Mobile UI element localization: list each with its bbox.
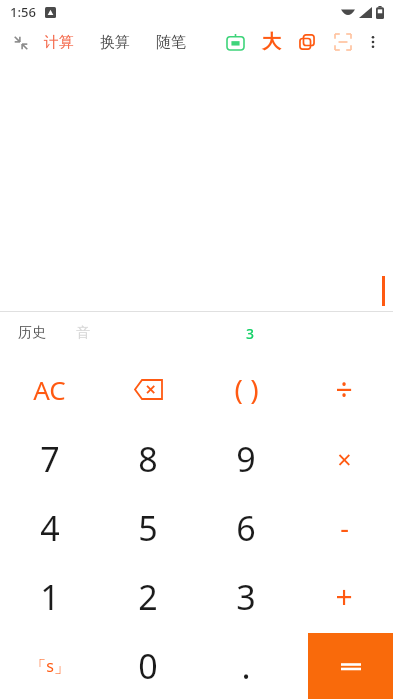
staticText: 1	[40, 574, 60, 620]
staticText: 随笔	[156, 33, 186, 52]
button[interactable]: Scan	[329, 28, 357, 56]
staticText: 计算	[44, 33, 74, 52]
staticText: 4	[40, 505, 60, 551]
button[interactable]: 历史	[14, 320, 50, 346]
button[interactable]: Parentheses	[197, 354, 295, 424]
staticText: 大	[262, 30, 281, 54]
staticText: 5	[138, 505, 158, 551]
button[interactable]: 9	[197, 424, 295, 493]
staticText: 2	[138, 574, 158, 620]
button[interactable]: 音	[72, 320, 94, 346]
button[interactable]: 0	[99, 631, 197, 700]
staticText: 换算	[100, 33, 130, 52]
button[interactable]: Multiply	[295, 424, 393, 493]
button[interactable]: Equals	[308, 633, 393, 699]
staticText: 历史	[18, 324, 46, 342]
staticText: 3	[236, 574, 256, 620]
button[interactable]: Copy	[293, 28, 321, 56]
staticText: 「s」	[30, 655, 70, 677]
button[interactable]: Plus	[295, 562, 393, 631]
staticText: ( )	[234, 370, 259, 408]
staticText: 8	[138, 436, 158, 482]
button[interactable]: Backspace	[99, 354, 197, 424]
button[interactable]: 7	[0, 424, 99, 493]
button[interactable]: Robot assistant	[221, 28, 249, 56]
staticText: 音	[76, 324, 90, 342]
button[interactable]: Minus	[295, 493, 393, 562]
button[interactable]: Clear all	[0, 354, 99, 424]
staticText: 0	[138, 643, 158, 689]
button[interactable]: 6	[197, 493, 295, 562]
button[interactable]: 随笔	[154, 29, 188, 56]
staticText: AC	[33, 372, 66, 407]
button[interactable]: Seconds	[0, 631, 99, 700]
button[interactable]: 1	[0, 562, 99, 631]
button[interactable]: .	[197, 631, 295, 700]
staticText: 9	[236, 436, 256, 482]
button[interactable]: More options	[359, 28, 387, 56]
button[interactable]: 换算	[98, 29, 132, 56]
button[interactable]: 计算	[42, 29, 76, 56]
staticText: 3	[246, 324, 255, 343]
button[interactable]: 4	[0, 493, 99, 562]
staticText: .	[241, 643, 251, 689]
button[interactable]: 2	[99, 562, 197, 631]
button[interactable]: 大	[257, 28, 285, 56]
button[interactable]: 8	[99, 424, 197, 493]
button[interactable]: 5	[99, 493, 197, 562]
staticText: ×	[337, 442, 352, 476]
staticText: ÷	[335, 369, 353, 410]
button[interactable]: Collapse	[8, 30, 34, 56]
staticText: 1:56	[10, 3, 36, 21]
staticText: 6	[236, 505, 256, 551]
button[interactable]: 3	[197, 562, 295, 631]
button[interactable]: Divide	[295, 354, 393, 424]
staticText: +	[335, 576, 353, 617]
staticText: 7	[40, 436, 60, 482]
staticText: -	[340, 509, 349, 546]
